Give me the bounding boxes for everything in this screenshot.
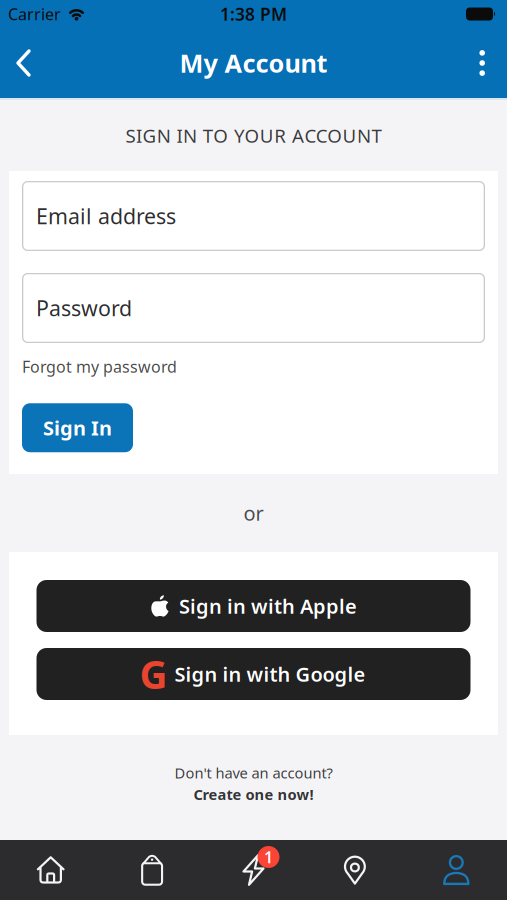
button[interactable]: Password bbox=[22, 273, 485, 343]
button[interactable]: Forgot my password bbox=[22, 356, 177, 377]
button[interactable] bbox=[101, 840, 203, 900]
button[interactable] bbox=[479, 38, 507, 88]
staticText: or bbox=[243, 500, 263, 526]
button[interactable]: Sign In bbox=[22, 403, 133, 452]
staticText: 1:38 PM bbox=[220, 2, 287, 25]
staticText: My Account bbox=[179, 46, 327, 80]
button[interactable]: Email address bbox=[22, 181, 485, 251]
button[interactable]: G bbox=[36, 648, 470, 700]
button[interactable] bbox=[406, 840, 507, 900]
button[interactable] bbox=[304, 840, 406, 900]
button[interactable]: Sign in with Apple bbox=[36, 580, 470, 632]
staticText: Create one now! bbox=[193, 784, 313, 804]
staticText: Password bbox=[36, 294, 132, 322]
staticText: Don't have an account? bbox=[174, 763, 332, 782]
staticText: Carrier bbox=[8, 3, 61, 25]
staticText: G bbox=[139, 648, 167, 700]
staticText: Sign In bbox=[43, 414, 112, 441]
staticText: Email address bbox=[36, 202, 176, 230]
button[interactable]: 1 bbox=[203, 840, 304, 900]
staticText: Sign in with Apple bbox=[179, 593, 357, 619]
button[interactable]: Create one now! bbox=[193, 784, 313, 804]
staticText: 1 bbox=[264, 846, 273, 868]
button[interactable] bbox=[0, 37, 32, 89]
button[interactable] bbox=[0, 840, 101, 900]
staticText: Sign in with Google bbox=[174, 661, 365, 687]
staticText: Forgot my password bbox=[22, 356, 177, 377]
staticText: SIGN IN TO YOUR ACCOUNT bbox=[126, 123, 381, 148]
